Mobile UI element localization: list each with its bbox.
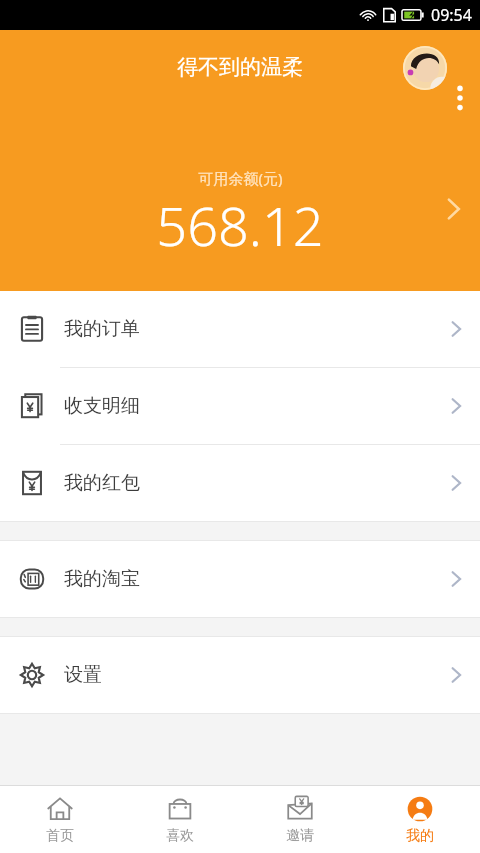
staticText: 得不到的温柔 (177, 54, 303, 80)
staticText: 邀请 (286, 827, 314, 845)
button[interactable]: 我的淘宝 (0, 541, 480, 617)
button[interactable]: 首页 (0, 786, 120, 853)
button[interactable]: 我的红包 (0, 445, 480, 521)
button[interactable]: 我的 (360, 786, 480, 853)
button[interactable]: Profile avatar (403, 46, 447, 90)
button[interactable]: More options (448, 76, 472, 120)
staticText: 设置 (64, 663, 102, 687)
button[interactable]: 可用余额(元) (0, 150, 480, 280)
button[interactable]: 设置 (0, 637, 480, 713)
button[interactable]: 收支明细 (0, 368, 480, 444)
button[interactable]: 喜欢 (120, 786, 240, 853)
staticText: 我的订单 (64, 317, 140, 341)
staticText: 568.12 (156, 188, 324, 262)
staticText: 可用余额(元) (198, 168, 283, 188)
staticText: 我的淘宝 (64, 567, 140, 591)
staticText: 首页 (46, 827, 74, 845)
staticText: 我的红包 (64, 471, 140, 495)
staticText: 09:54 (431, 4, 472, 26)
staticText: 喜欢 (166, 827, 194, 845)
staticText: 收支明细 (64, 394, 140, 418)
button[interactable]: 我的订单 (0, 291, 480, 367)
button[interactable]: 邀请 (240, 786, 360, 853)
staticText: 我的 (406, 827, 434, 845)
